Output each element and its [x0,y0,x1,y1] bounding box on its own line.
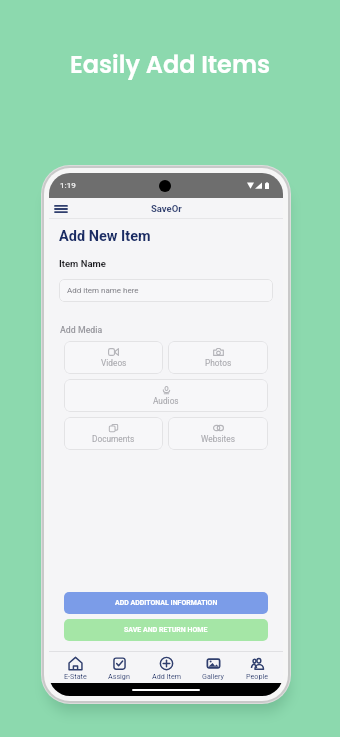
button[interactable]: E-State [60,656,91,680]
staticText: Documents [92,434,135,444]
staticText: Photos [205,358,232,368]
staticText: People [246,672,268,680]
staticText: Add Item [152,672,181,680]
button[interactable]: Assign [104,656,134,680]
button[interactable]: Audios [64,379,268,412]
staticText: ADD ADDITONAL INFORMATION [115,599,218,607]
button[interactable]: Gallery [198,656,229,680]
staticText: Audios [153,396,179,406]
staticText: Add New Item [59,228,151,245]
staticText: Videos [101,358,127,368]
button[interactable]: SAVE AND RETURN HOME [64,619,268,641]
button[interactable]: Add item name here [59,279,273,302]
button[interactable]: Websites [168,417,268,450]
button[interactable]: People [242,656,272,680]
staticText: Assign [108,672,130,680]
staticText: Add item name here [67,286,139,295]
button[interactable]: Documents [64,417,163,450]
button[interactable]: ADD ADDITONAL INFORMATION [64,592,268,614]
staticText: 1:19 [60,181,76,190]
staticText: Gallery [202,672,225,680]
button[interactable]: Videos [64,341,163,374]
staticText: Add Media [60,325,103,335]
staticText: Websites [201,434,235,444]
staticText: E-State [64,672,87,680]
staticText: Easily Add Items [70,48,271,82]
staticText: SAVE AND RETURN HOME [124,626,208,634]
staticText: Item Name [59,258,106,269]
button[interactable]: Photos [168,341,268,374]
button[interactable]: Add Item [148,656,185,680]
staticText: SaveOr [151,203,182,214]
button[interactable]: Open navigation menu [52,200,70,218]
